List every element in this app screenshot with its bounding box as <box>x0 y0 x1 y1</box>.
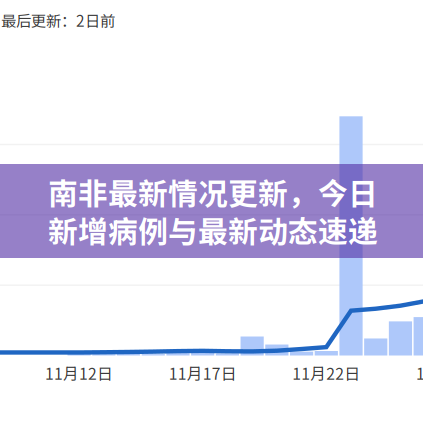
staticText: 新增病例与最新动态速递 <box>48 208 378 251</box>
staticText: 11月17日 <box>169 362 237 384</box>
staticText: 11月22日 <box>292 362 360 384</box>
staticText: 11月12日 <box>45 362 113 384</box>
staticText: 11月27日 <box>416 362 423 384</box>
staticText: 最后更新：2日前 <box>1 9 115 31</box>
staticText: 南非最新情况更新，今日 <box>48 170 378 213</box>
